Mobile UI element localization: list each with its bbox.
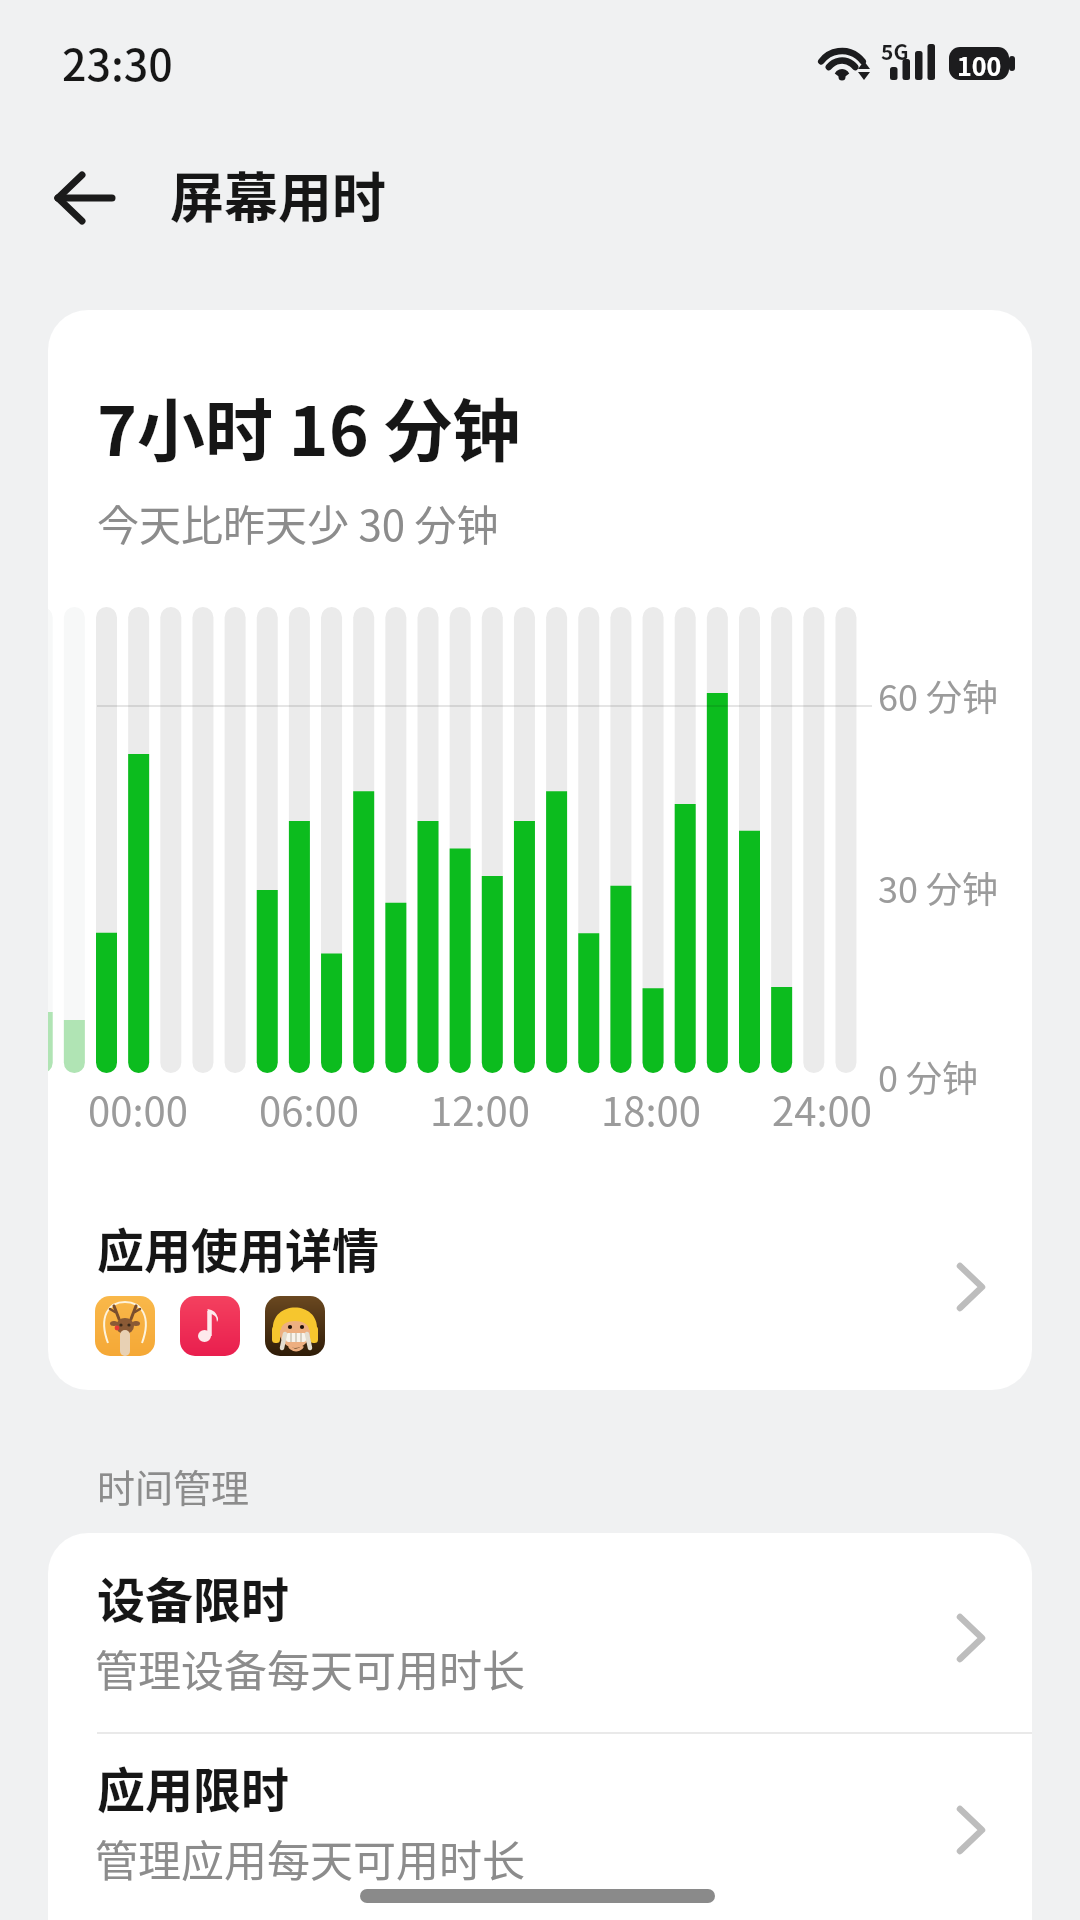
staticText: 管理应用每天可用时长 xyxy=(95,1827,525,1889)
staticText: 12:00 xyxy=(430,1080,530,1138)
staticText: 屏幕用时 xyxy=(170,155,386,233)
staticText: 0 分钟 xyxy=(878,1050,979,1102)
staticText: 5G xyxy=(881,36,909,66)
staticText: 应用使用详情 xyxy=(97,1213,379,1281)
staticText: 7小时 16 分钟 xyxy=(97,377,521,475)
staticText: 00:00 xyxy=(88,1080,188,1138)
button[interactable]: 应用限时 xyxy=(48,1734,1032,1920)
staticText: 30 分钟 xyxy=(878,861,999,913)
staticText: 24:00 xyxy=(772,1080,872,1138)
button[interactable] xyxy=(54,170,118,226)
staticText: 今天比昨天少 30 分钟 xyxy=(97,492,499,553)
button[interactable]: 应用使用详情 xyxy=(48,1190,1032,1390)
staticText: 时间管理 xyxy=(97,1458,250,1513)
staticText: 100 xyxy=(957,47,1002,80)
staticText: 设备限时 xyxy=(97,1562,290,1632)
staticText: 23:30 xyxy=(62,31,173,93)
staticText: 应用限时 xyxy=(97,1752,290,1822)
staticText: 06:00 xyxy=(259,1080,359,1138)
staticText: 管理设备每天可用时长 xyxy=(95,1637,525,1699)
staticText: 60 分钟 xyxy=(878,669,999,721)
button[interactable]: 设备限时 xyxy=(48,1533,1032,1732)
staticText: 18:00 xyxy=(601,1080,701,1138)
